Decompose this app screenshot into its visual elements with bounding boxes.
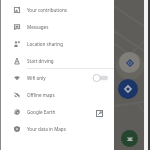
button[interactable]: Offline maps	[0, 86, 114, 103]
button[interactable]: My location	[119, 52, 140, 73]
button[interactable]: Your contributions	[0, 1, 114, 18]
staticText: Your data in Maps	[27, 126, 66, 132]
staticText: Messages	[27, 24, 49, 30]
staticText: Offline maps	[27, 92, 55, 98]
button[interactable]: Messages	[0, 18, 114, 35]
staticText: Google Earth	[27, 109, 56, 115]
button[interactable]: Google Earth	[0, 103, 114, 120]
staticText: Location sharing	[27, 41, 63, 47]
button[interactable]: Directions	[118, 79, 138, 99]
staticText: Your contributions	[27, 7, 67, 13]
button[interactable]: Wifi only	[0, 69, 114, 86]
button[interactable]: Explore	[121, 130, 138, 147]
button[interactable]: Location sharing	[0, 35, 114, 52]
staticText: Wifi only	[27, 75, 46, 81]
button[interactable]: Start driving	[0, 52, 114, 69]
staticText: Start driving	[27, 58, 54, 64]
button[interactable]: Your data in Maps	[0, 120, 114, 137]
